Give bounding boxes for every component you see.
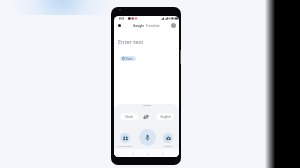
button[interactable]: Home [144, 150, 151, 157]
staticText: Camera [158, 144, 178, 147]
button[interactable]: Paste [120, 56, 136, 61]
staticText: Conversation [115, 144, 135, 147]
button[interactable]: Swap languages [142, 113, 149, 120]
button[interactable]: English [156, 113, 174, 120]
staticText: Enter text [118, 38, 144, 45]
staticText: Paste [126, 57, 133, 61]
staticText: Translate [146, 24, 160, 28]
staticText: Hindi [125, 115, 133, 119]
button[interactable]: Hindi [120, 113, 138, 120]
button[interactable]: Menu [116, 22, 123, 29]
staticText: English [160, 115, 171, 119]
button[interactable]: Camera [158, 133, 178, 147]
staticText: Google [133, 24, 145, 28]
button[interactable]: Microphone [139, 129, 156, 146]
button[interactable]: Recents [159, 150, 166, 157]
button[interactable]: Conversation [115, 133, 135, 147]
button[interactable]: Account [171, 23, 176, 28]
button[interactable]: Back [129, 150, 136, 157]
